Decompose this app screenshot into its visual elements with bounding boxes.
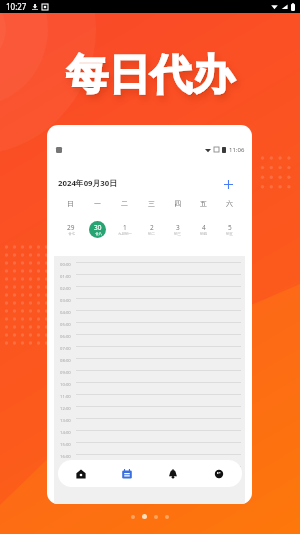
button[interactable]: Home [58, 460, 104, 487]
staticText: 2 [150, 223, 154, 232]
staticText: 05:00 [60, 322, 71, 328]
button[interactable]: Profile [196, 460, 242, 487]
button[interactable]: Page 1 [131, 515, 135, 519]
staticText: 九月初一 [118, 232, 132, 236]
staticText: 初四 [200, 232, 207, 236]
button[interactable]: 29 [62, 221, 79, 238]
staticText: 三 [148, 199, 155, 208]
staticText: 初三 [174, 232, 181, 236]
staticText: 每日代办 [66, 49, 234, 102]
staticText: 08:00 [60, 358, 71, 364]
staticText: 16:00 [60, 454, 71, 460]
staticText: 一 [94, 199, 101, 208]
button[interactable]: Notifications [150, 460, 196, 487]
staticText: 廿八 [95, 232, 102, 236]
staticText: 2024年09月30日 [58, 178, 118, 189]
staticText: 每日代办 [67, 50, 235, 103]
staticText: 3 [176, 223, 180, 232]
staticText: 初五 [226, 232, 233, 236]
button[interactable]: 3 [169, 221, 186, 238]
button[interactable]: 5 [221, 221, 238, 238]
button[interactable]: Calendar [104, 460, 150, 487]
staticText: 07:00 [60, 346, 71, 352]
staticText: 14:00 [60, 430, 71, 436]
button[interactable]: Add event [221, 177, 235, 191]
staticText: 初二 [148, 232, 155, 236]
staticText: 11:00 [60, 394, 71, 400]
staticText: 03:00 [60, 298, 71, 304]
staticText: 二 [121, 199, 128, 208]
staticText: 15:00 [60, 442, 71, 448]
staticText: 1 [123, 223, 127, 232]
button[interactable]: 4 [195, 221, 212, 238]
staticText: 29 [67, 223, 75, 232]
button[interactable]: Page 3 [154, 515, 158, 519]
staticText: 02:00 [60, 286, 71, 292]
staticText: 04:00 [60, 310, 71, 316]
staticText: 01:00 [60, 274, 71, 280]
staticText: 廿七 [68, 232, 75, 236]
staticText: 13:00 [60, 418, 71, 424]
staticText: 11:06 [229, 146, 245, 154]
button[interactable]: 30 [89, 221, 106, 238]
staticText: 06:00 [60, 334, 71, 340]
staticText: 30 [94, 223, 102, 232]
staticText: 日 [67, 199, 74, 208]
staticText: 五 [200, 199, 207, 208]
staticText: 4 [202, 223, 206, 232]
staticText: 四 [174, 199, 181, 208]
button[interactable]: Page 2 [142, 514, 147, 519]
staticText: 12:00 [60, 406, 71, 412]
button[interactable]: 2 [143, 221, 160, 238]
button[interactable]: 1 [116, 221, 133, 238]
staticText: 5 [228, 223, 232, 232]
staticText: 00:00 [60, 262, 71, 268]
button[interactable]: Page 4 [165, 515, 169, 519]
staticText: 10:00 [60, 382, 71, 388]
staticText: 10:27 [6, 1, 27, 12]
staticText: 09:00 [60, 370, 71, 376]
staticText: 六 [226, 199, 233, 208]
